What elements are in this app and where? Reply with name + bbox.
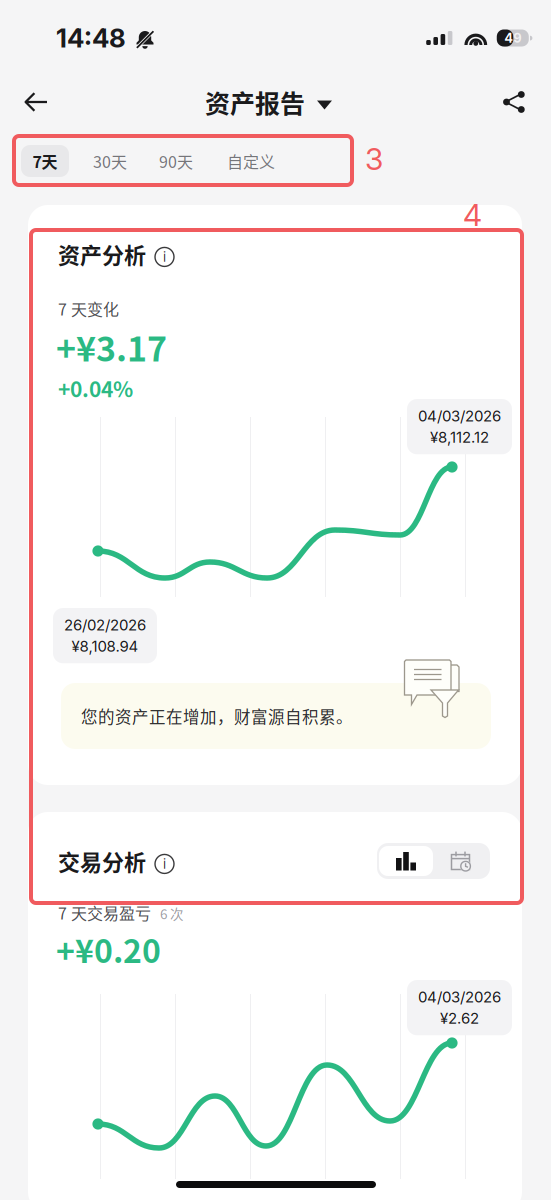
staticText: 交易分析	[58, 845, 146, 877]
button[interactable]: 资产报告	[205, 76, 332, 128]
staticText: 3	[365, 141, 383, 177]
staticText: 自定义	[227, 149, 275, 173]
staticText: 04/03/2026	[418, 407, 501, 425]
staticText: 您的资产正在增加，财富源自积累。	[81, 704, 353, 728]
staticText: 资产分析	[58, 238, 146, 270]
staticText: ¥8,112.12	[430, 428, 489, 446]
button[interactable]: Share	[488, 76, 540, 128]
staticText: 4	[463, 197, 482, 233]
staticText: 90天	[159, 149, 193, 173]
button[interactable]: 30天	[82, 145, 138, 177]
button[interactable]: 自定义	[211, 145, 291, 177]
button[interactable]: 90天	[148, 145, 204, 177]
button[interactable]: Chart view	[379, 846, 433, 876]
staticText: +¥0.20	[56, 926, 161, 972]
staticText: ¥2.62	[440, 1009, 479, 1027]
staticText: 14:48	[56, 22, 126, 54]
staticText: 30天	[93, 149, 127, 173]
staticText: 9	[513, 30, 521, 46]
staticText: ¥8,108.94	[71, 637, 138, 655]
staticText: 6 次	[160, 904, 184, 923]
staticText: 资产报告	[205, 84, 305, 120]
staticText: i	[163, 856, 166, 872]
button[interactable]: Calendar view	[434, 846, 488, 876]
button[interactable]: Back	[10, 76, 62, 128]
staticText: 26/02/2026	[64, 616, 146, 634]
button[interactable]: 7天	[21, 145, 69, 177]
staticText: 7 天变化	[58, 297, 119, 320]
staticText: i	[163, 249, 166, 265]
staticText: 04/03/2026	[418, 988, 501, 1006]
staticText: +¥3.17	[56, 322, 167, 371]
staticText: +0.04%	[58, 373, 133, 403]
staticText: 4	[504, 30, 513, 46]
staticText: 7天	[32, 149, 57, 173]
staticText: 7 天交易盈亏	[58, 901, 151, 924]
